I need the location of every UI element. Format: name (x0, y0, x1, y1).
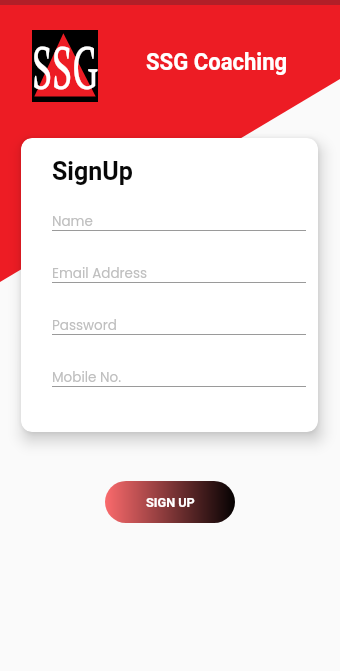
button[interactable]: SIGN UP (105, 481, 235, 523)
staticText: SignUp (52, 157, 133, 186)
staticText: Mobile No. (52, 368, 121, 387)
staticText: Password (52, 316, 117, 335)
staticText: SIGN UP (146, 495, 195, 510)
staticText: SSG (32, 26, 98, 106)
staticText: SSG Coaching (146, 48, 312, 76)
staticText: Email Address (52, 264, 148, 283)
staticText: Name (52, 212, 93, 231)
